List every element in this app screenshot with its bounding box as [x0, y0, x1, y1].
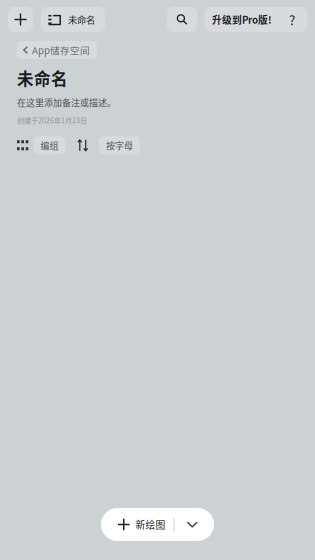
button[interactable]: 未命名: [41, 7, 105, 32]
staticText: 升级到Pro版!: [212, 12, 272, 27]
button[interactable]: 升级到Pro版!: [205, 7, 307, 32]
button[interactable]: Search: [167, 7, 197, 32]
staticText: 新绘图: [135, 517, 165, 532]
staticText: 在这里添加备注或描述。: [17, 96, 116, 109]
staticText: 创建于2026年1月23日: [17, 115, 87, 125]
staticText: App储存空间: [32, 43, 90, 57]
staticText: 未命名: [17, 66, 68, 90]
button[interactable]: New canvas: [8, 7, 33, 32]
staticText: ?: [289, 10, 295, 29]
button[interactable]: App储存空间: [17, 41, 97, 59]
staticText: 编组: [40, 139, 58, 152]
button[interactable]: 新绘图: [101, 508, 214, 541]
staticText: 按字母: [106, 139, 133, 152]
button[interactable]: 编组: [33, 136, 65, 154]
button[interactable]: 按字母: [99, 136, 140, 154]
staticText: 未命名: [68, 13, 95, 26]
